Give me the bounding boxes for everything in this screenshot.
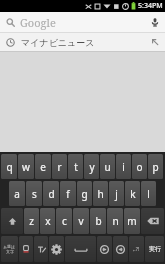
button[interactable]: q (1, 154, 17, 179)
button[interactable]: m (124, 208, 140, 234)
staticText: u (104, 160, 111, 174)
button[interactable]: o (132, 154, 147, 179)
staticText: Google (20, 15, 56, 30)
staticText: r (57, 160, 62, 174)
staticText: b (95, 214, 102, 228)
staticText: k (130, 187, 136, 201)
staticText: q (6, 160, 13, 174)
staticText: 文字 (6, 249, 14, 254)
staticText: l (147, 187, 150, 201)
button[interactable]: Move cursor left (97, 236, 112, 262)
button[interactable]: Voice search (145, 12, 165, 32)
button[interactable]: Google (0, 12, 165, 32)
staticText: w (22, 160, 30, 174)
button[interactable]: b (90, 208, 106, 234)
staticText: z (29, 214, 34, 228)
staticText: p (152, 160, 159, 174)
button[interactable]: w (18, 154, 34, 179)
button[interactable]: Shift (1, 208, 23, 234)
staticText: e (40, 160, 46, 174)
staticText: v (78, 214, 84, 228)
staticText: i (122, 160, 125, 174)
button[interactable]: d (43, 181, 59, 206)
button[interactable]: k (125, 181, 140, 206)
button[interactable]: y (84, 154, 99, 179)
staticText: s (32, 187, 37, 201)
button[interactable]: j (109, 181, 124, 206)
button[interactable]: Move cursor right (113, 236, 128, 262)
staticText: d (48, 187, 55, 201)
button[interactable]: u (100, 154, 115, 179)
staticText: 実行 (149, 245, 161, 253)
staticText: c (62, 214, 67, 228)
staticText: j (115, 187, 118, 201)
button[interactable]: r (52, 154, 67, 179)
button[interactable]: Handwriting (34, 236, 48, 262)
button[interactable]: a (9, 181, 25, 206)
button[interactable]: z (24, 208, 39, 234)
staticText: a (14, 187, 20, 201)
staticText: t (74, 160, 78, 174)
button[interactable]: l (141, 181, 156, 206)
button[interactable]: Space (65, 236, 96, 262)
button[interactable]: Delete (141, 208, 164, 234)
staticText: h (97, 187, 104, 201)
button[interactable]: Execute (145, 236, 164, 262)
button[interactable]: i (116, 154, 131, 179)
staticText: g (81, 187, 88, 201)
staticText: x (45, 214, 51, 228)
button[interactable]: Insert suggestion (145, 33, 165, 51)
button[interactable]: マイナビニュース (0, 33, 165, 51)
staticText: m (127, 214, 137, 228)
button[interactable]: f (60, 181, 76, 206)
button[interactable]: e (35, 154, 51, 179)
button[interactable]: t (68, 154, 83, 179)
staticText: ,.?! (133, 246, 140, 253)
button[interactable]: v (73, 208, 89, 234)
button[interactable]: Switch input mode (1, 236, 18, 262)
button[interactable]: g (77, 181, 92, 206)
button[interactable]: c (56, 208, 72, 234)
button[interactable]: h (93, 181, 108, 206)
button[interactable]: Symbols (129, 236, 144, 262)
button[interactable]: x (40, 208, 55, 234)
staticText: y (89, 160, 95, 174)
staticText: マイナビニュース (21, 37, 95, 48)
staticText: ぁ醤は (3, 244, 16, 249)
button[interactable]: Emoji (19, 236, 33, 262)
button[interactable]: n (107, 208, 123, 234)
staticText: 5:34PM (138, 1, 163, 11)
staticText: f (66, 187, 70, 201)
button[interactable]: p (148, 154, 163, 179)
staticText: o (136, 160, 143, 174)
staticText: n (112, 214, 119, 228)
button[interactable]: Settings (49, 236, 64, 262)
button[interactable]: s (26, 181, 42, 206)
